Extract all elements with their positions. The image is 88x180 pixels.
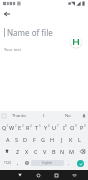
- staticText: Thanks: [12, 113, 27, 119]
- button[interactable]: Navigate up: [2, 9, 12, 19]
- staticText: 1: [7, 124, 9, 128]
- button[interactable]: O: [69, 122, 78, 132]
- button[interactable]: Comma: [13, 158, 22, 168]
- staticText: H: [50, 136, 55, 143]
- button[interactable]: K: [66, 134, 75, 144]
- staticText: 2: [15, 124, 17, 128]
- button[interactable]: N: [58, 146, 67, 156]
- button[interactable]: I: [32, 111, 56, 121]
- button[interactable]: Thanks: [7, 111, 32, 121]
- button[interactable]: V: [40, 146, 49, 156]
- staticText: R: [26, 124, 30, 131]
- button[interactable]: Done: [73, 158, 87, 168]
- button[interactable]: A: [4, 134, 12, 144]
- staticText: V: [43, 148, 47, 155]
- button[interactable]: Z: [13, 146, 22, 156]
- staticText: 5: [39, 124, 41, 128]
- button[interactable]: T: [33, 122, 42, 132]
- button[interactable]: Recent apps: [47, 170, 65, 180]
- button[interactable]: R: [25, 122, 33, 132]
- button[interactable]: U: [51, 122, 60, 132]
- staticText: E: [18, 124, 22, 131]
- staticText: 3: [22, 124, 24, 128]
- button[interactable]: Hide keyboard: [65, 170, 83, 180]
- staticText: I: [63, 124, 65, 131]
- staticText: O: [70, 124, 75, 131]
- button[interactable]: S: [12, 134, 21, 144]
- staticText: X: [25, 148, 29, 155]
- button[interactable]: B: [49, 146, 58, 156]
- button[interactable]: J: [57, 134, 66, 144]
- staticText: Q: [2, 124, 7, 131]
- staticText: K: [69, 136, 73, 143]
- button[interactable]: Save: [70, 36, 82, 48]
- button[interactable]: E: [17, 122, 25, 132]
- staticText: L: [78, 136, 81, 143]
- button[interactable]: Back: [11, 170, 29, 180]
- button[interactable]: Emoji: [22, 158, 31, 168]
- staticText: N: [60, 148, 65, 155]
- button[interactable]: No: [56, 111, 80, 121]
- staticText: D: [23, 136, 28, 143]
- staticText: W: [9, 124, 15, 131]
- button[interactable]: Expand suggestions: [0, 111, 7, 121]
- staticText: T: [35, 124, 39, 131]
- button[interactable]: L: [75, 134, 84, 144]
- staticText: .: [68, 160, 70, 167]
- staticText: English: [42, 161, 53, 165]
- staticText: Z: [16, 148, 20, 155]
- staticText: 4: [30, 124, 32, 128]
- button[interactable]: D: [21, 134, 30, 144]
- button[interactable]: Backspace: [76, 146, 88, 156]
- staticText: 9: [75, 124, 77, 128]
- staticText: C: [34, 148, 38, 155]
- staticText: J: [61, 136, 63, 143]
- staticText: B: [52, 148, 56, 155]
- button[interactable]: Voice input: [80, 111, 88, 121]
- staticText: F: [33, 136, 36, 143]
- staticText: S: [15, 136, 19, 143]
- button[interactable]: Symbols: [1, 158, 13, 168]
- staticText: No: [65, 113, 71, 119]
- button[interactable]: Period: [64, 158, 73, 168]
- button[interactable]: X: [22, 146, 31, 156]
- button[interactable]: P: [78, 122, 87, 132]
- button[interactable]: Y: [42, 122, 51, 132]
- button[interactable]: G: [39, 134, 48, 144]
- button[interactable]: Name of file: [4, 26, 88, 38]
- staticText: Y: [44, 124, 48, 131]
- button[interactable]: Shift: [0, 146, 13, 156]
- staticText: 8: [65, 124, 67, 128]
- button[interactable]: English: [31, 160, 64, 166]
- button[interactable]: Your text: [4, 47, 21, 52]
- staticText: A: [6, 136, 10, 143]
- button[interactable]: I: [60, 122, 69, 132]
- staticText: I: [43, 113, 45, 119]
- button[interactable]: Q: [1, 122, 9, 132]
- staticText: ?123: [4, 161, 11, 165]
- button[interactable]: W: [9, 122, 17, 132]
- button[interactable]: F: [30, 134, 39, 144]
- staticText: ,: [17, 160, 19, 167]
- staticText: 6: [48, 124, 50, 128]
- staticText: U: [52, 124, 57, 131]
- staticText: M: [69, 148, 74, 155]
- staticText: 0: [84, 124, 86, 128]
- staticText: Name of file: [7, 27, 53, 38]
- button[interactable]: Home: [29, 170, 47, 180]
- staticText: 7: [57, 124, 59, 128]
- staticText: P: [80, 124, 84, 131]
- button[interactable]: M: [67, 146, 76, 156]
- button[interactable]: H: [48, 134, 57, 144]
- staticText: G: [41, 136, 46, 143]
- button[interactable]: C: [31, 146, 40, 156]
